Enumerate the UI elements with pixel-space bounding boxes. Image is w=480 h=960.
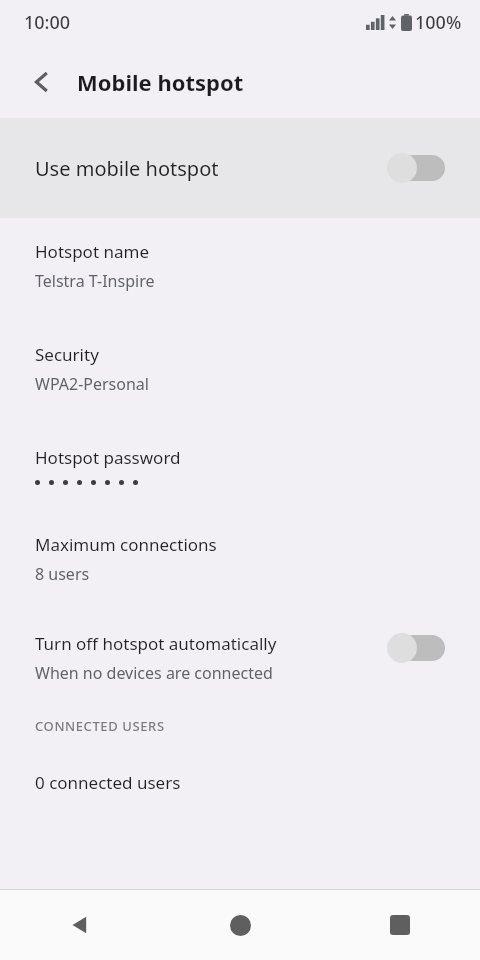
staticText: Hotspot password xyxy=(35,446,181,469)
button[interactable]: Use mobile hotspot xyxy=(0,118,480,218)
button[interactable]: Security xyxy=(0,343,480,395)
button[interactable]: Recent apps xyxy=(320,890,480,960)
button[interactable]: Turn off hotspot automatically xyxy=(0,632,480,684)
staticText: When no devices are connected xyxy=(35,662,273,684)
button[interactable]: Hotspot password xyxy=(0,446,480,485)
button[interactable]: Maximum connections xyxy=(0,533,480,585)
staticText: 0 connected users xyxy=(35,771,181,794)
staticText: Hotspot name xyxy=(35,240,149,263)
staticText: WPA2-Personal xyxy=(35,373,149,395)
staticText: Mobile hotspot xyxy=(77,67,244,97)
staticText: Maximum connections xyxy=(35,533,217,556)
staticText: Telstra T-Inspire xyxy=(35,270,155,292)
staticText: 100% xyxy=(415,10,462,35)
staticText: Use mobile hotspot xyxy=(35,155,219,182)
staticText: CONNECTED USERS xyxy=(35,717,165,735)
button[interactable]: Back xyxy=(0,890,160,960)
staticText: Security xyxy=(35,343,99,366)
staticText: Turn off hotspot automatically xyxy=(35,632,277,655)
button[interactable]: Hotspot name xyxy=(0,240,480,292)
button[interactable]: Home xyxy=(160,890,320,960)
staticText: 8 users xyxy=(35,563,90,585)
button[interactable]: Back xyxy=(20,60,64,104)
staticText: 10:00 xyxy=(24,10,71,35)
